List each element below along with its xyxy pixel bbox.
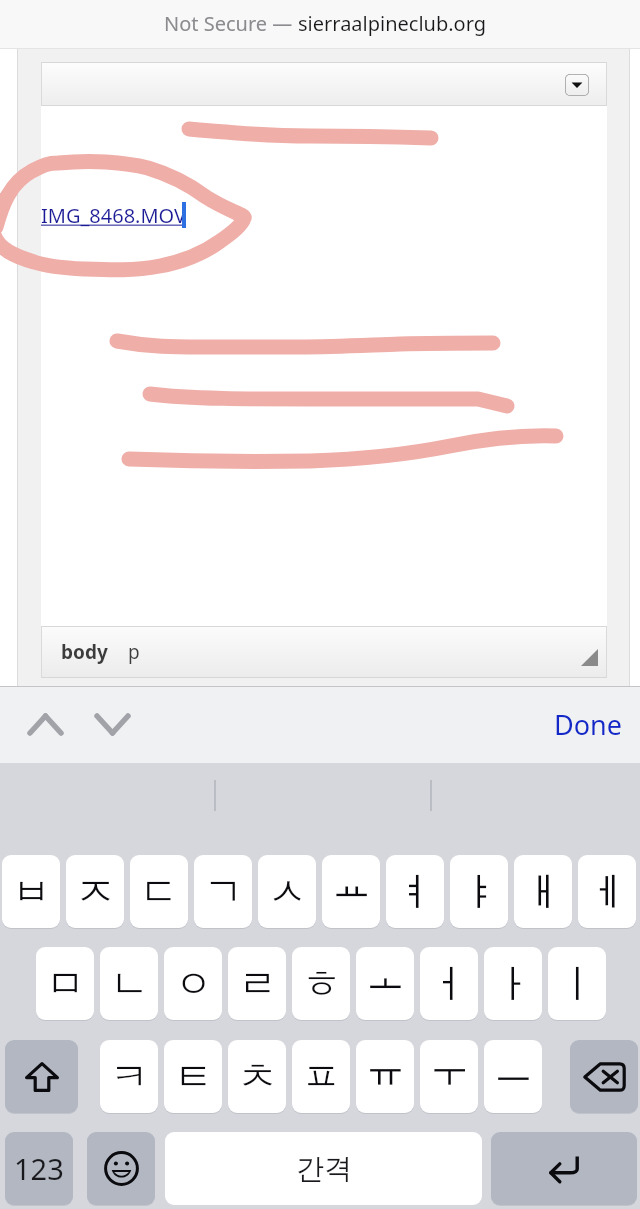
button[interactable]: Next field: [79, 696, 145, 752]
button[interactable]: ㅔ: [578, 855, 636, 928]
button[interactable]: Return: [491, 1132, 637, 1205]
button[interactable]: ㅑ: [450, 855, 508, 928]
button[interactable]: ㄴ: [100, 947, 158, 1020]
staticText: ㅎ: [302, 959, 341, 1008]
button[interactable]: ㅠ: [356, 1040, 414, 1113]
button[interactable]: ㅡ: [484, 1040, 542, 1113]
button[interactable]: Previous field: [12, 696, 78, 752]
button[interactable]: ㄷ: [130, 855, 188, 928]
staticText: ㅍ: [302, 1052, 341, 1101]
staticText: Done: [554, 706, 622, 743]
staticText: ㅅ: [268, 867, 307, 916]
button[interactable]: ㅜ: [420, 1040, 478, 1113]
button[interactable]: Done: [538, 694, 638, 754]
staticText: body: [61, 639, 108, 665]
button[interactable]: ㅕ: [386, 855, 444, 928]
staticText: ㅐ: [524, 867, 563, 916]
staticText: ㅋ: [110, 1052, 149, 1101]
button[interactable]: ㅛ: [322, 855, 380, 928]
button[interactable]: ㅍ: [292, 1040, 350, 1113]
staticText: ㅣ: [558, 959, 597, 1008]
button[interactable]: ㅎ: [292, 947, 350, 1020]
button[interactable]: ㅁ: [36, 947, 94, 1020]
staticText: ㅜ: [430, 1044, 469, 1093]
staticText: ㅁ: [46, 959, 85, 1008]
button[interactable]: ㅐ: [514, 855, 572, 928]
button[interactable]: ㅂ: [2, 855, 60, 928]
button[interactable]: ㄹ: [228, 947, 286, 1020]
button[interactable]: Not Secure —: [0, 0, 640, 49]
staticText: 간격: [296, 1151, 352, 1186]
staticText: ㄴ: [110, 959, 149, 1008]
staticText: ㅕ: [396, 867, 435, 916]
staticText: IMG_8468.MOV: [41, 202, 187, 229]
staticText: ㅠ: [366, 1044, 405, 1093]
staticText: ㄱ: [204, 867, 243, 916]
staticText: p: [128, 639, 140, 665]
staticText: ㄷ: [140, 867, 179, 916]
staticText: ㅌ: [174, 1052, 213, 1101]
button[interactable]: ㅈ: [66, 855, 124, 928]
staticText: ㅊ: [238, 1052, 277, 1101]
staticText: ㅛ: [332, 859, 371, 908]
button[interactable]: ㅗ: [356, 947, 414, 1020]
button[interactable]: ㅓ: [420, 947, 478, 1020]
button[interactable]: Emoji: [87, 1132, 155, 1205]
button[interactable]: ㅇ: [164, 947, 222, 1020]
staticText: Not Secure —: [164, 10, 298, 37]
staticText: sierraalpineclub.org: [298, 10, 487, 37]
button[interactable]: ㅣ: [548, 947, 606, 1020]
staticText: ㅔ: [588, 867, 627, 916]
staticText: 123: [14, 1149, 64, 1188]
button[interactable]: Shift: [5, 1040, 78, 1113]
button[interactable]: Numbers: [5, 1132, 73, 1205]
staticText: ㅂ: [12, 867, 51, 916]
button[interactable]: Backspace: [570, 1040, 638, 1113]
button[interactable]: ㅏ: [484, 947, 542, 1020]
button[interactable]: 간격: [165, 1132, 482, 1205]
staticText: ㅗ: [366, 951, 405, 1000]
button[interactable]: ㅅ: [258, 855, 316, 928]
button[interactable]: Open options: [565, 74, 589, 96]
staticText: ㅡ: [494, 1044, 533, 1093]
staticText: ㄹ: [238, 959, 277, 1008]
staticText: ㅑ: [460, 867, 499, 916]
button[interactable]: ㅊ: [228, 1040, 286, 1113]
button[interactable]: ㄱ: [194, 855, 252, 928]
staticText: ㅈ: [76, 867, 115, 916]
staticText: ㅓ: [430, 959, 469, 1008]
button[interactable]: IMG_8468.MOV: [41, 202, 187, 229]
staticText: ㅇ: [174, 959, 213, 1008]
staticText: ㅏ: [494, 959, 533, 1008]
button[interactable]: ㅌ: [164, 1040, 222, 1113]
button[interactable]: ㅋ: [100, 1040, 158, 1113]
